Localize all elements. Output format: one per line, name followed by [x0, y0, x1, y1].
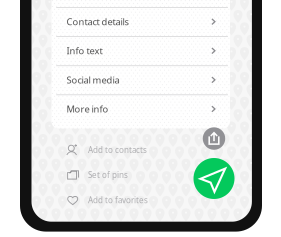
button[interactable]: Share [203, 127, 225, 150]
button[interactable]: Add to contacts [67, 142, 177, 158]
staticText: Info text [66, 45, 102, 57]
staticText: Contact details [66, 15, 128, 28]
button[interactable]: Info text [51, 36, 230, 65]
button[interactable]: Contact details [51, 7, 230, 36]
button[interactable]: Add to favorites [67, 192, 177, 208]
button[interactable]: Set of pins [67, 167, 177, 183]
staticText: More info [66, 103, 108, 115]
staticText: Add to contacts [88, 144, 147, 155]
button[interactable]: Social media [51, 65, 230, 94]
button[interactable]: More info [51, 94, 230, 123]
staticText: Social media [66, 74, 119, 86]
button[interactable]: Send [193, 158, 234, 199]
staticText: Add to favorites [88, 195, 148, 205]
staticText: Set of pins [88, 170, 128, 180]
